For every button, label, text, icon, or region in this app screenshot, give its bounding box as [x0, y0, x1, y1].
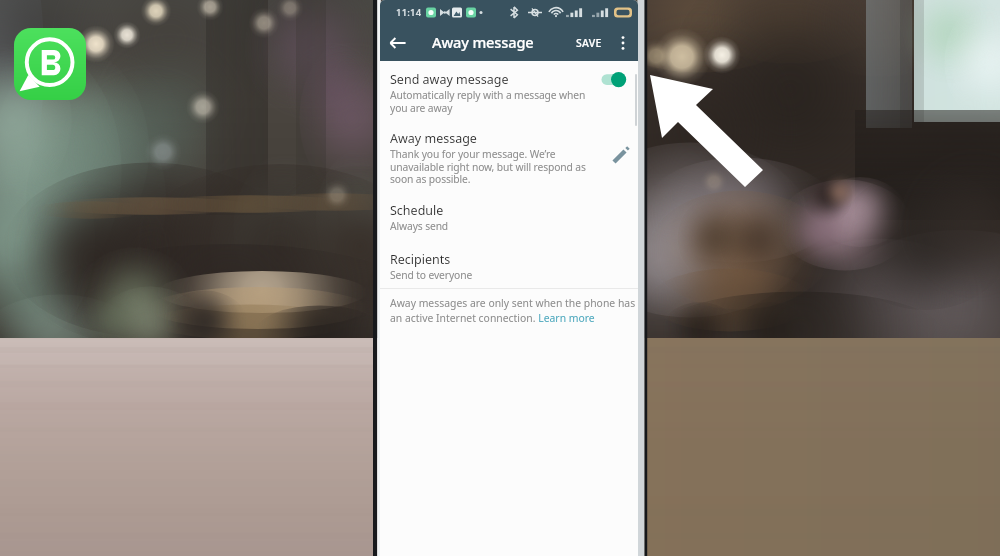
- button[interactable]: More options: [608, 29, 638, 59]
- button[interactable]: SAVE: [566, 28, 608, 60]
- button[interactable]: Schedule: [380, 198, 638, 239]
- button[interactable]: WhatsApp Business: [14, 28, 86, 100]
- button[interactable]: Recipients: [380, 247, 638, 288]
- button[interactable]: Send away message: [380, 67, 638, 121]
- staticText: Recipients: [390, 251, 451, 268]
- staticText: Automatically reply with a message when …: [390, 88, 594, 115]
- staticText: Away messages are only sent when the pho…: [390, 296, 638, 325]
- staticText: Away message: [390, 130, 477, 147]
- staticText: Away message: [432, 32, 534, 52]
- button[interactable]: Edit away message: [604, 130, 638, 172]
- staticText: Always send: [390, 219, 449, 233]
- staticText: Schedule: [390, 202, 444, 219]
- staticText: Thank you for your message. We’re unavai…: [390, 147, 604, 186]
- button[interactable]: Send away message toggle: [594, 71, 632, 97]
- button[interactable]: Back: [380, 26, 416, 61]
- staticText: Send to everyone: [390, 268, 473, 282]
- staticText: 11:14: [396, 6, 422, 19]
- staticText: SAVE: [576, 36, 602, 50]
- button[interactable]: Away message: [380, 126, 638, 192]
- staticText: Send away message: [390, 71, 509, 88]
